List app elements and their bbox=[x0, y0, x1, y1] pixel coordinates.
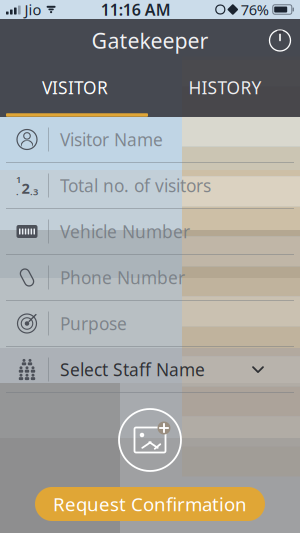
staticText: Jio bbox=[25, 0, 42, 19]
staticText: Visitor Name bbox=[60, 128, 163, 151]
button[interactable]: 1. bbox=[0, 163, 300, 209]
button[interactable]: Visitor Name bbox=[0, 117, 300, 163]
button[interactable]: Log out bbox=[260, 19, 300, 62]
button[interactable]: Purpose bbox=[0, 301, 300, 347]
staticText: VISITOR bbox=[42, 76, 108, 99]
button[interactable]: Request Confirmation bbox=[35, 487, 265, 521]
staticText: Vehicle Number bbox=[60, 220, 190, 243]
staticText: Phone Number bbox=[60, 266, 185, 289]
button[interactable]: Select Staff Name bbox=[0, 347, 300, 393]
staticText: HISTORY bbox=[188, 76, 261, 99]
staticText: Total no. of visitors bbox=[60, 174, 211, 197]
button[interactable]: Add photo bbox=[119, 409, 181, 471]
staticText: 1. bbox=[16, 173, 21, 198]
button[interactable]: Phone Number bbox=[0, 255, 300, 301]
button[interactable]: VISITOR bbox=[0, 62, 150, 113]
staticText: 76% bbox=[241, 0, 269, 19]
staticText: Request Confirmation bbox=[53, 492, 247, 516]
button[interactable]: Vehicle Number bbox=[0, 209, 300, 255]
staticText: 11:16 AM bbox=[101, 0, 171, 20]
staticText: Gatekeeper bbox=[91, 26, 208, 55]
button[interactable]: HISTORY bbox=[150, 62, 300, 113]
staticText: Select Staff Name bbox=[60, 358, 205, 381]
staticText: 2 bbox=[21, 178, 29, 198]
staticText: Purpose bbox=[60, 312, 127, 335]
staticText: .3 bbox=[30, 185, 38, 198]
